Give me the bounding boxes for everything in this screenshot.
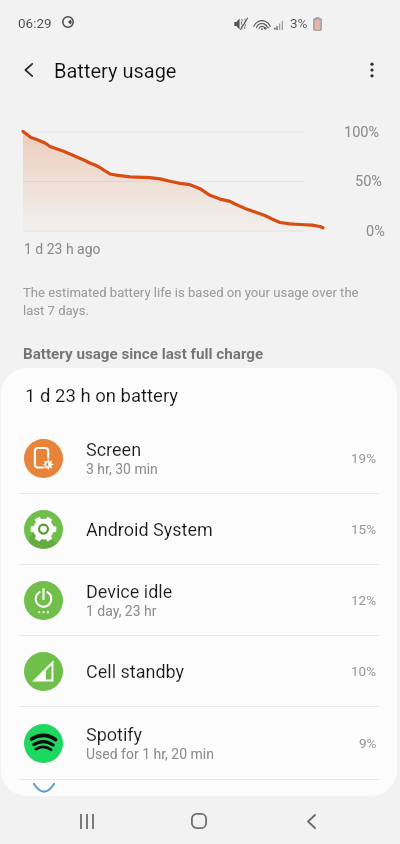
staticText: Battery usage (54, 59, 177, 82)
staticText: 3 hr, 30 min (86, 461, 158, 477)
staticText: 0% (366, 223, 385, 240)
button[interactable]: Device idle (1, 565, 397, 635)
button[interactable]: Android System (1, 494, 397, 564)
button[interactable]: Recents (63, 797, 111, 844)
staticText: 50% (355, 173, 382, 190)
staticText: 3% (290, 15, 308, 31)
button[interactable]: Back (287, 797, 335, 844)
staticText: 1 day, 23 hr (86, 603, 157, 619)
staticText: 100% (344, 124, 380, 141)
button[interactable]: Screen (1, 423, 397, 493)
staticText: Screen (86, 439, 142, 460)
staticText: 12% (351, 592, 377, 608)
staticText: Used for 1 hr, 20 min (86, 746, 214, 762)
staticText: The estimated battery life is based on y… (23, 285, 359, 319)
staticText: 19% (351, 450, 377, 466)
staticText: Cell standby (86, 661, 185, 682)
staticText: Spotify (86, 724, 143, 745)
staticText: Device idle (86, 581, 173, 602)
button[interactable]: Home (175, 797, 223, 844)
staticText: 9% (359, 735, 377, 751)
staticText: 06:29 (18, 15, 52, 31)
staticText: 1 d 23 h ago (24, 241, 101, 257)
staticText: 1 d 23 h on battery (25, 385, 179, 407)
staticText: Android System (86, 519, 213, 540)
button[interactable]: Spotify (1, 707, 397, 779)
staticText: Battery usage since last full charge (23, 345, 264, 363)
staticText: 10% (351, 663, 377, 679)
staticText: 15% (351, 521, 377, 537)
button[interactable]: Back (10, 51, 48, 89)
button[interactable]: More options (352, 50, 392, 90)
button[interactable]: Cell standby (1, 636, 397, 706)
